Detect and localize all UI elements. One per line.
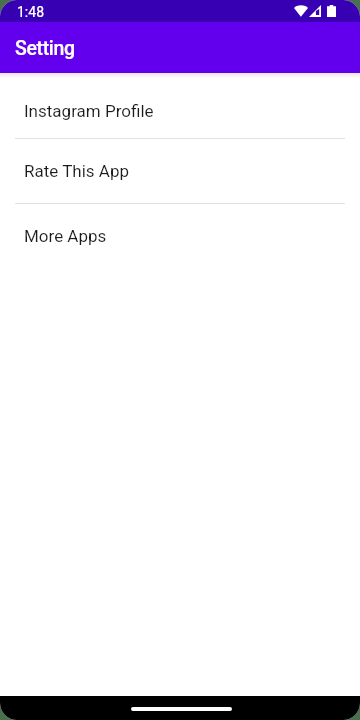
other: Mobile signal: [309, 5, 321, 17]
staticText: Rate This App: [24, 161, 129, 181]
staticText: More Apps: [24, 226, 107, 246]
button[interactable]: Instagram Profile: [0, 73, 360, 138]
staticText: Instagram Profile: [24, 101, 154, 121]
staticText: Setting: [15, 37, 75, 60]
button[interactable]: More Apps: [0, 204, 360, 269]
button[interactable]: Rate This App: [0, 139, 360, 203]
other: Wi-Fi: [294, 5, 308, 17]
staticText: 1:48: [17, 4, 44, 20]
button[interactable]: Home: [131, 707, 232, 711]
other: Battery: [327, 5, 336, 17]
